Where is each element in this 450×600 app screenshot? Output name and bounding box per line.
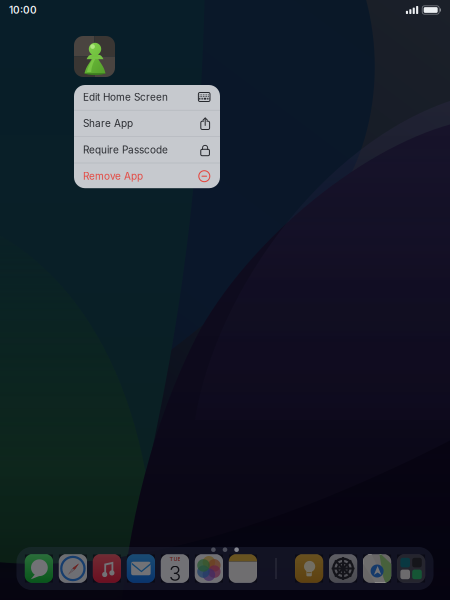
staticText: Remove App: [83, 170, 143, 182]
staticText: TUE: [169, 556, 180, 562]
button[interactable]: Music: [93, 554, 121, 582]
staticText: Edit Home Screen: [83, 91, 168, 103]
button[interactable]: Notes: [229, 554, 257, 582]
button[interactable]: Tips: [295, 554, 323, 582]
button[interactable]: Chess: [74, 36, 115, 77]
button[interactable]: Maps: [363, 554, 391, 582]
button[interactable]: Require Passcode: [74, 137, 220, 163]
button[interactable]: Edit Home Screen: [74, 84, 220, 110]
button[interactable]: Messages: [25, 554, 53, 582]
button[interactable]: Settings: [329, 554, 357, 582]
button[interactable]: Share App: [74, 110, 220, 136]
button[interactable]: Safari: [59, 554, 87, 582]
staticText: 10:00: [9, 4, 37, 16]
button[interactable]: Photos: [195, 554, 223, 582]
button[interactable]: Remove App: [74, 163, 220, 189]
button[interactable]: More apps folder: [397, 554, 425, 582]
button[interactable]: Calendar: [161, 554, 189, 582]
staticText: Share App: [83, 117, 133, 129]
button[interactable]: Mail: [127, 554, 155, 582]
staticText: 3: [169, 561, 181, 586]
staticText: Require Passcode: [83, 144, 168, 156]
